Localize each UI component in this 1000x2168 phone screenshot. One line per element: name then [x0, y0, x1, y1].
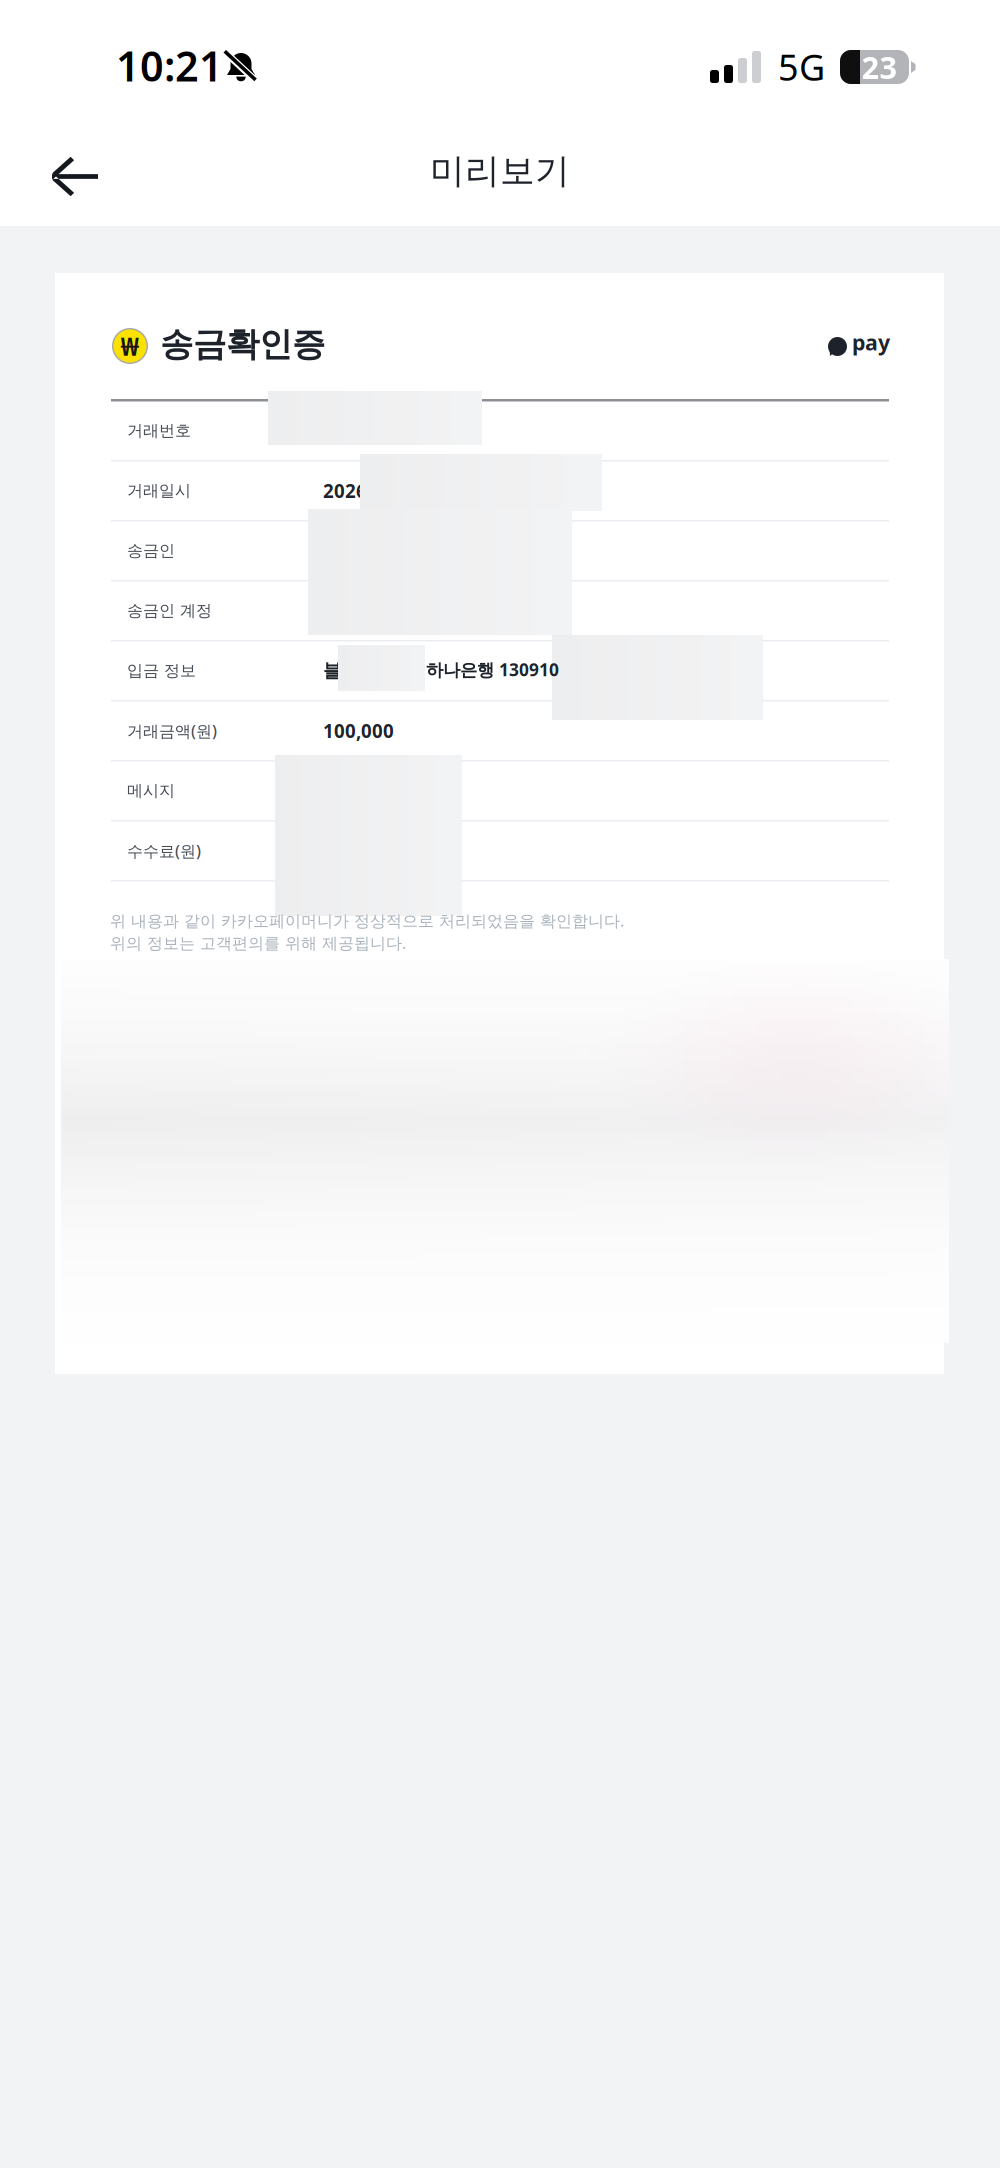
staticText: 입금 정보 — [127, 661, 196, 681]
staticText: 100,000 — [323, 718, 394, 743]
staticText: 10:21 — [116, 38, 223, 93]
staticText: pay — [852, 328, 890, 356]
staticText: 송금확인증 — [160, 324, 325, 365]
staticText: 거래번호 — [127, 421, 191, 441]
button[interactable]: Back — [0, 116, 124, 226]
staticText: 미리보기 — [430, 150, 570, 192]
staticText: 블 — [323, 659, 342, 682]
staticText: 수수료(원) — [127, 840, 201, 861]
staticText: 메시지 — [127, 781, 175, 801]
staticText: 거래금액(원) — [127, 720, 217, 741]
staticText: ₩ — [120, 329, 139, 363]
staticText: 2026 — [323, 478, 367, 503]
staticText: 거래일시 — [127, 481, 191, 501]
staticText: 하나은행 130910 — [426, 658, 559, 681]
staticText: 23 — [861, 47, 897, 87]
staticText: 송금인 계정 — [127, 601, 212, 621]
staticText: 위의 정보는 고객편의를 위해 제공됩니다. — [110, 932, 406, 953]
staticText: 5G — [778, 43, 825, 91]
staticText: 송금인 — [127, 541, 175, 561]
staticText: 위 내용과 같이 카카오페이머니가 정상적으로 처리되었음을 확인합니다. — [110, 910, 624, 931]
